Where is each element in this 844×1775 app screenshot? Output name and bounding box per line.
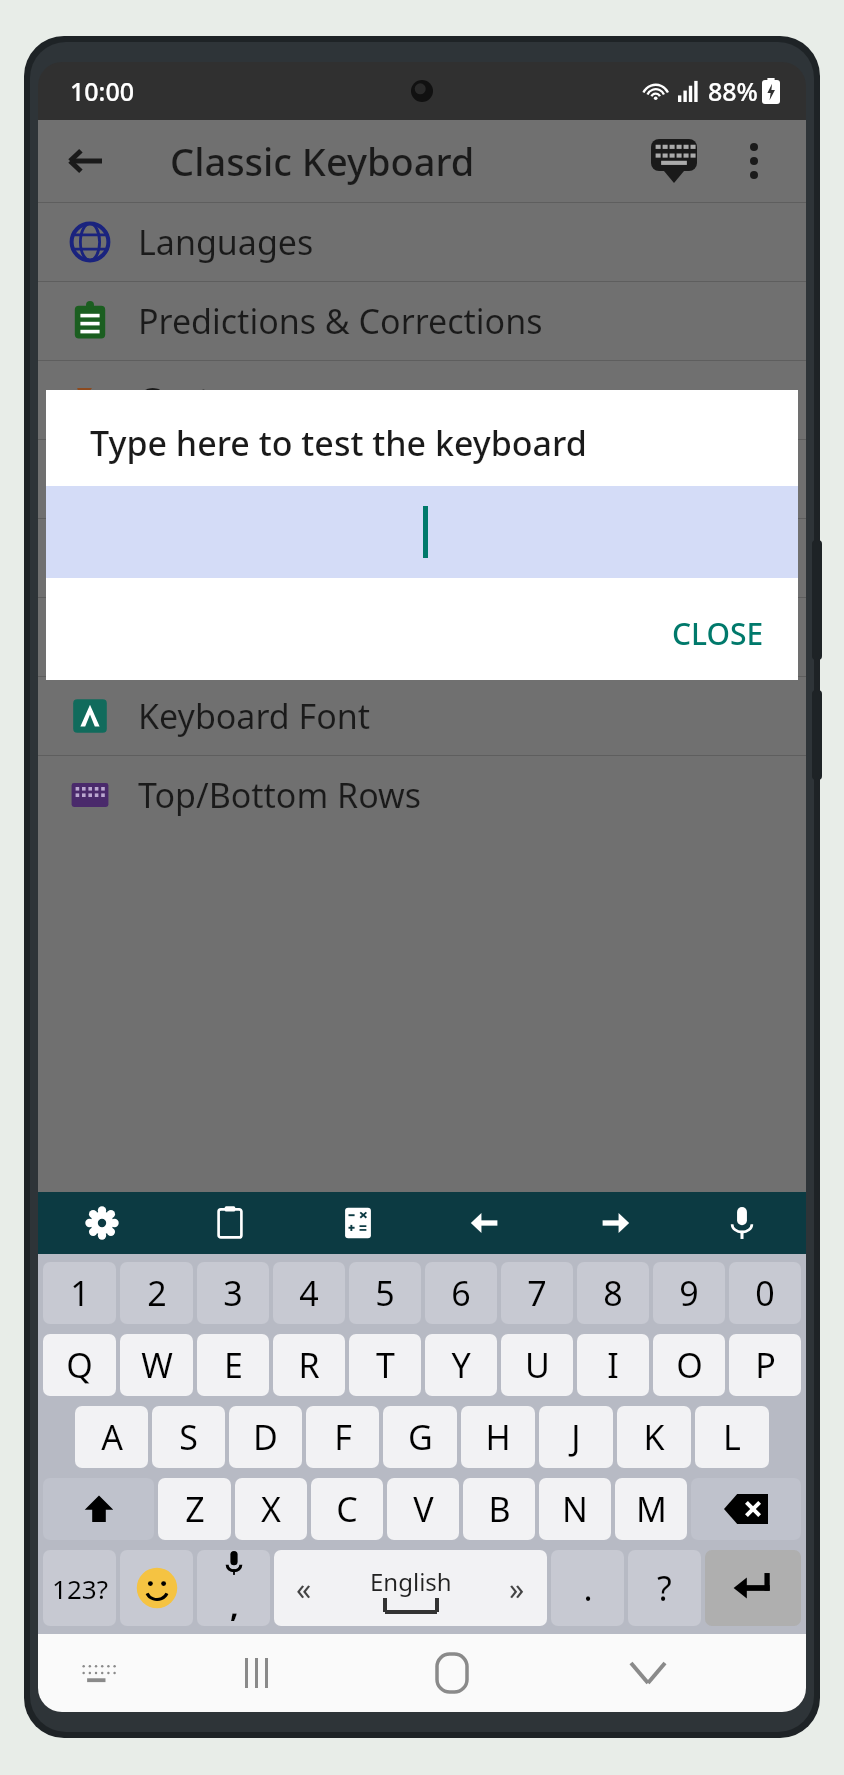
- staticText: E: [224, 1342, 243, 1388]
- staticText: W: [141, 1342, 173, 1388]
- staticText: I: [607, 1342, 619, 1388]
- button[interactable]: J: [539, 1406, 613, 1468]
- staticText: Type here to test the keyboard: [90, 420, 587, 466]
- button[interactable]: M: [615, 1478, 687, 1540]
- staticText: V: [413, 1486, 434, 1532]
- staticText: 7: [527, 1270, 547, 1316]
- staticText: O: [676, 1342, 703, 1388]
- button[interactable]: U: [501, 1334, 573, 1396]
- button[interactable]: Recents: [158, 1634, 354, 1712]
- button[interactable]: B: [463, 1478, 535, 1540]
- staticText: J: [571, 1414, 581, 1460]
- staticText: Y: [451, 1342, 471, 1388]
- button[interactable]: Z: [158, 1478, 231, 1540]
- staticText: M: [636, 1486, 667, 1532]
- button[interactable]: Y: [425, 1334, 497, 1396]
- button[interactable]: 4: [273, 1262, 345, 1324]
- button[interactable]: Settings: [38, 1192, 166, 1254]
- staticText: 10:00: [70, 74, 135, 108]
- button[interactable]: Languages: [38, 203, 806, 281]
- button[interactable]: N: [539, 1478, 611, 1540]
- button[interactable]: F: [306, 1406, 379, 1468]
- staticText: A: [101, 1414, 123, 1460]
- staticText: «: [296, 1568, 312, 1609]
- button[interactable]: 0: [729, 1262, 801, 1324]
- button[interactable]: Calculator: [294, 1192, 422, 1254]
- staticText: Sound & Vibration: [138, 535, 428, 581]
- staticText: 123?: [52, 1571, 108, 1606]
- button[interactable]: Backspace: [691, 1478, 801, 1540]
- button[interactable]: 7: [501, 1262, 573, 1324]
- button[interactable]: Q: [43, 1334, 116, 1396]
- button[interactable]: W: [120, 1334, 193, 1396]
- button[interactable]: Voice input: [678, 1192, 806, 1254]
- button[interactable]: Clipboard: [166, 1192, 294, 1254]
- button[interactable]: Back: [56, 132, 114, 190]
- button[interactable]: Predictions & Corrections: [38, 282, 806, 360]
- button[interactable]: 2: [120, 1262, 193, 1324]
- staticText: Languages: [138, 219, 314, 265]
- staticText: Appearance: [138, 456, 329, 502]
- staticText: Predictions & Corrections: [138, 298, 543, 344]
- staticText: G: [408, 1414, 433, 1460]
- button[interactable]: Move left: [422, 1192, 550, 1254]
- staticText: P: [755, 1342, 776, 1388]
- button[interactable]: Move right: [550, 1192, 678, 1254]
- button[interactable]: S: [152, 1406, 225, 1468]
- button[interactable]: D: [229, 1406, 302, 1468]
- button[interactable]: 8: [577, 1262, 649, 1324]
- staticText: 3: [223, 1270, 243, 1316]
- button[interactable]: A: [75, 1406, 148, 1468]
- staticText: 4: [299, 1270, 319, 1316]
- button[interactable]: I: [577, 1334, 649, 1396]
- button[interactable]: Home: [354, 1634, 550, 1712]
- button[interactable]: K: [617, 1406, 691, 1468]
- staticText: 88%: [708, 74, 758, 108]
- button[interactable]: More options: [726, 133, 782, 189]
- staticText: Keyboard Font: [138, 693, 371, 739]
- button[interactable]: 6: [425, 1262, 497, 1324]
- staticText: X: [261, 1486, 281, 1532]
- button[interactable]: Top/Bottom Rows: [38, 756, 806, 834]
- button[interactable]: 3: [197, 1262, 269, 1324]
- button[interactable]: L: [695, 1406, 769, 1468]
- button[interactable]: E: [197, 1334, 269, 1396]
- button[interactable]: 9: [653, 1262, 725, 1324]
- staticText: Q: [66, 1342, 93, 1388]
- button[interactable]: Keyboard Font: [38, 677, 806, 755]
- button[interactable]: ?: [628, 1550, 701, 1626]
- button[interactable]: G: [383, 1406, 457, 1468]
- staticText: L: [723, 1414, 741, 1460]
- staticText: 8: [603, 1270, 623, 1316]
- button[interactable]: R: [273, 1334, 345, 1396]
- button[interactable]: CLOSE: [638, 597, 798, 670]
- button[interactable]: Shift: [43, 1478, 154, 1540]
- button[interactable]: C: [311, 1478, 383, 1540]
- button[interactable]: T: [349, 1334, 421, 1396]
- button[interactable]: Enter: [705, 1550, 801, 1626]
- button[interactable]: Key Size: [38, 598, 806, 676]
- button[interactable]: V: [387, 1478, 459, 1540]
- button[interactable]: Sound & Vibration: [38, 519, 806, 597]
- button[interactable]: «: [274, 1550, 547, 1626]
- staticText: 6: [451, 1270, 471, 1316]
- button[interactable]: 1: [43, 1262, 116, 1324]
- staticText: Top/Bottom Rows: [138, 772, 422, 818]
- button[interactable]: H: [461, 1406, 535, 1468]
- button[interactable]: O: [653, 1334, 725, 1396]
- button[interactable]: Switch keyboard: [38, 1634, 158, 1712]
- button[interactable]: 5: [349, 1262, 421, 1324]
- button[interactable]: Gestures: [38, 361, 806, 439]
- button[interactable]: Show keyboard: [642, 129, 706, 193]
- staticText: ,: [230, 1585, 239, 1626]
- button[interactable]: P: [729, 1334, 801, 1396]
- button[interactable]: 123?: [43, 1550, 116, 1626]
- staticText: Z: [185, 1486, 205, 1532]
- button[interactable]: X: [235, 1478, 307, 1540]
- button[interactable]: Appearance: [38, 440, 806, 518]
- button[interactable]: Hide keyboard: [550, 1634, 746, 1712]
- button[interactable]: .: [551, 1550, 624, 1626]
- button[interactable]: Voice and comma: [197, 1550, 270, 1626]
- button[interactable]: Emoji: [120, 1550, 193, 1626]
